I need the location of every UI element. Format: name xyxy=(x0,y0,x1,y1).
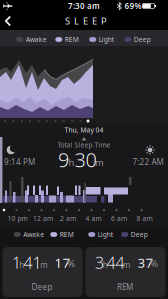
staticText: h xyxy=(103,260,108,270)
staticText: Light xyxy=(99,35,114,44)
staticText: 4 am xyxy=(85,214,101,223)
staticText: Thu, May 04 xyxy=(64,126,103,134)
staticText: m xyxy=(123,260,130,270)
staticText: 7:22 AM xyxy=(132,157,163,167)
staticText: % xyxy=(150,257,158,270)
staticText: h xyxy=(68,156,74,169)
staticText: 37 xyxy=(137,254,153,271)
staticText: 3 xyxy=(95,252,104,273)
staticText: 17 xyxy=(54,254,70,271)
staticText: Deep xyxy=(31,281,52,292)
staticText: REM xyxy=(117,281,133,292)
staticText: m xyxy=(40,260,47,270)
staticText: 7:30 am xyxy=(68,1,100,11)
staticText: 9 xyxy=(58,146,69,173)
staticText: Total Sleep Time xyxy=(57,141,110,149)
staticText: 69% xyxy=(124,1,141,11)
staticText: 9:14 PM xyxy=(4,157,35,167)
staticText: 10 pm xyxy=(7,214,27,223)
staticText: % xyxy=(67,257,75,270)
staticText: SLEEP xyxy=(65,15,107,27)
button[interactable]: Thu, May 04 xyxy=(64,126,103,134)
button[interactable] xyxy=(0,13,16,29)
staticText: Light xyxy=(98,230,113,239)
staticText: h xyxy=(19,260,24,270)
staticText: 30 xyxy=(74,146,96,173)
staticText: 6 am xyxy=(111,214,127,223)
staticText: REM xyxy=(60,230,74,239)
staticText: Deep xyxy=(134,35,151,44)
staticText: Awake xyxy=(26,35,47,44)
staticText: 2 am xyxy=(60,214,76,223)
staticText: 44 xyxy=(106,252,124,273)
staticText: Awake xyxy=(23,230,44,239)
staticText: 12 am xyxy=(33,214,53,223)
staticText: m xyxy=(95,156,104,169)
button[interactable] xyxy=(2,247,82,297)
button[interactable] xyxy=(85,247,165,297)
staticText: REM xyxy=(65,35,79,44)
staticText: Deep xyxy=(131,230,148,239)
staticText: 1 xyxy=(12,252,21,273)
staticText: 41 xyxy=(23,252,41,273)
staticText: 8 am xyxy=(136,214,152,223)
